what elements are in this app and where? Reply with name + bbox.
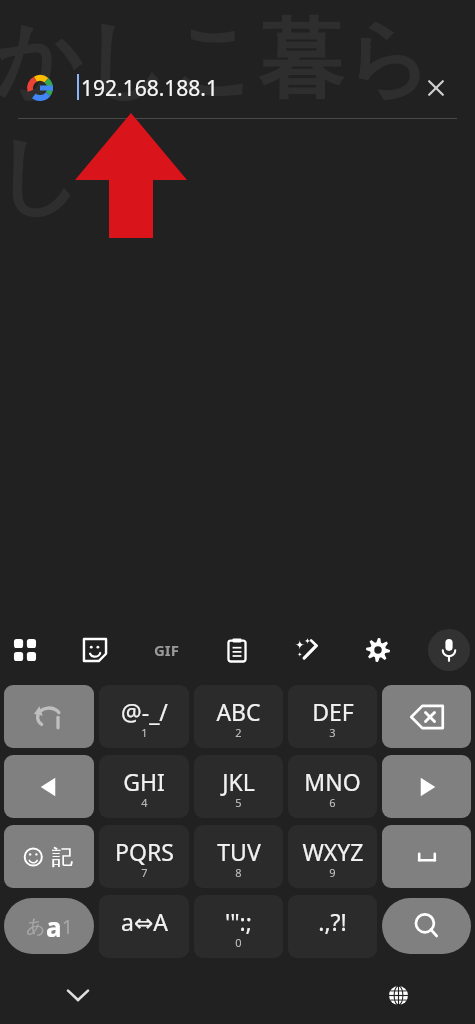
button[interactable]: Search xyxy=(382,898,471,954)
button[interactable]: Hide keyboard xyxy=(55,972,101,1018)
staticText: 1 xyxy=(62,914,73,940)
staticText: PQRS xyxy=(115,836,174,867)
button[interactable]: Keyboard layouts xyxy=(2,627,48,673)
staticText: '":; xyxy=(225,906,252,937)
button[interactable]: Change language xyxy=(375,972,421,1018)
button[interactable]: .,?! xyxy=(288,895,377,958)
staticText: 0 xyxy=(235,935,242,950)
button[interactable]: Settings xyxy=(355,627,401,673)
staticText: 5 xyxy=(235,795,242,810)
button[interactable]: Stickers xyxy=(72,627,118,673)
staticText: かしこ暮らし xyxy=(0,6,469,230)
button[interactable]: '":; xyxy=(194,895,283,958)
button[interactable]: @-_/ xyxy=(99,685,189,748)
staticText: ABC xyxy=(216,696,261,727)
staticText: 2 xyxy=(235,725,242,740)
button[interactable]: Emoji and symbols xyxy=(4,825,94,888)
button[interactable]: Clear text xyxy=(414,66,458,110)
staticText: 6 xyxy=(329,795,336,810)
staticText: TUV xyxy=(217,836,261,867)
staticText: 3 xyxy=(329,725,336,740)
staticText: 9 xyxy=(329,865,336,880)
button[interactable]: WXYZ xyxy=(288,825,377,888)
button[interactable]: MNO xyxy=(288,755,377,818)
button[interactable]: Space xyxy=(382,825,471,888)
button[interactable]: Clipboard xyxy=(214,627,260,673)
staticText: 7 xyxy=(141,865,148,880)
staticText: 8 xyxy=(235,865,242,880)
button[interactable]: Undo xyxy=(4,685,94,748)
button[interactable]: TUV xyxy=(194,825,283,888)
staticText: GIF xyxy=(154,640,179,660)
button[interactable]: Backspace xyxy=(382,685,471,748)
staticText: 4 xyxy=(141,795,148,810)
staticText: a xyxy=(46,909,62,944)
staticText: GHI xyxy=(123,766,165,797)
staticText: WXYZ xyxy=(302,836,364,867)
staticText: .,?! xyxy=(318,906,347,937)
staticText: DEF xyxy=(312,696,354,727)
staticText: MNO xyxy=(304,766,361,797)
staticText: 記 xyxy=(52,844,73,870)
staticText: a⇔A xyxy=(121,906,168,937)
staticText: @-_/ xyxy=(121,696,168,727)
button[interactable]: Voice input xyxy=(426,627,472,673)
button[interactable]: PQRS xyxy=(99,825,189,888)
button[interactable]: あ xyxy=(4,898,94,954)
button[interactable]: GIF xyxy=(143,627,189,673)
button[interactable]: Magic compose xyxy=(284,627,330,673)
button[interactable]: Move cursor right xyxy=(382,755,471,818)
button[interactable]: GHI xyxy=(99,755,189,818)
button[interactable]: ABC xyxy=(194,685,283,748)
button[interactable]: JKL xyxy=(194,755,283,818)
staticText: あ xyxy=(26,915,46,939)
button[interactable]: DEF xyxy=(288,685,377,748)
staticText: 192.168.188.1 xyxy=(81,74,219,103)
button[interactable]: a⇔A xyxy=(99,895,189,958)
button[interactable]: Move cursor left xyxy=(4,755,94,818)
staticText: JKL xyxy=(222,766,255,797)
staticText: 1 xyxy=(141,725,148,740)
